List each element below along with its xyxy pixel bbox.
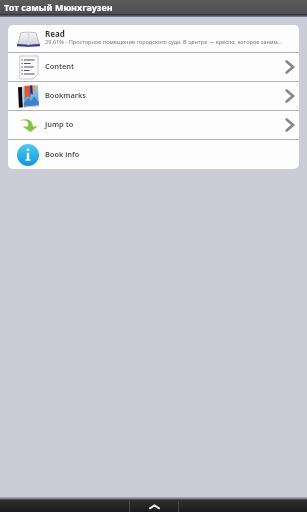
button[interactable]: Book info: [8, 140, 299, 169]
staticText: Book info: [45, 149, 80, 159]
button[interactable]: Content: [8, 53, 299, 81]
staticText: Тот самый Мюнхгаузен: [4, 1, 113, 13]
staticText: Content: [45, 61, 75, 71]
button[interactable]: Jump to: [8, 111, 299, 139]
staticText: 29.61% - Просторное помещение городского…: [45, 38, 283, 46]
button[interactable]: Read: [8, 25, 299, 52]
staticText: Jump to: [45, 119, 74, 129]
staticText: Bookmarks: [45, 90, 86, 100]
staticText: Read: [45, 28, 65, 39]
button[interactable]: Show menu: [130, 501, 178, 512]
button[interactable]: Bookmarks: [8, 82, 299, 110]
